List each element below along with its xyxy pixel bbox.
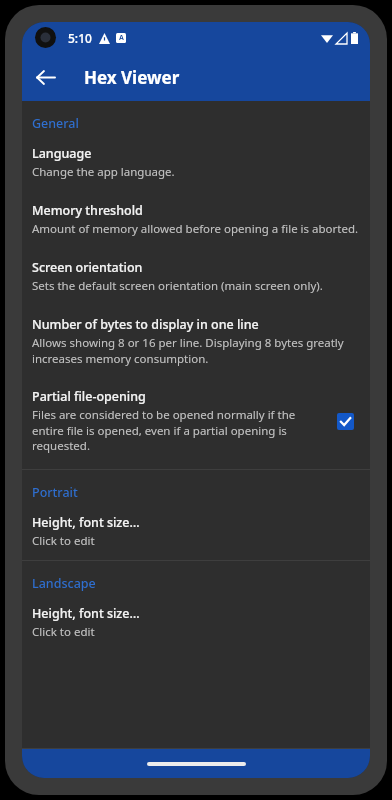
staticText: Memory threshold	[32, 202, 143, 219]
staticText: Click to edit	[32, 533, 95, 549]
staticText: 5:10	[68, 30, 92, 46]
button[interactable]: Number of bytes to display in one line	[22, 305, 370, 377]
button[interactable]: Language	[22, 134, 370, 191]
button[interactable]: Partial file-opening toggle	[330, 406, 360, 436]
staticText: Height, font size…	[32, 605, 140, 622]
staticText: Allows showing 8 or 16 per line. Display…	[32, 335, 360, 366]
staticText: Hex Viewer	[84, 66, 180, 89]
button[interactable]: Partial file-opening	[22, 377, 370, 464]
staticText: Number of bytes to display in one line	[32, 316, 259, 333]
button[interactable]: Screen orientation	[22, 248, 370, 305]
staticText: Screen orientation	[32, 259, 143, 276]
staticText: Language	[32, 145, 92, 162]
staticText: General	[32, 115, 79, 132]
staticText: A	[119, 33, 124, 43]
staticText: Files are considered to be opened normal…	[32, 407, 320, 453]
staticText: Partial file-opening	[32, 388, 146, 405]
button[interactable]: Memory threshold	[22, 191, 370, 248]
staticText: Click to edit	[32, 624, 95, 640]
staticText: Height, font size…	[32, 514, 140, 531]
staticText: Sets the default screen orientation (mai…	[32, 278, 323, 294]
staticText: Landscape	[32, 575, 96, 592]
button[interactable]: Height, font size…	[22, 503, 370, 560]
staticText: Portrait	[32, 484, 78, 501]
button[interactable]: Back	[22, 54, 68, 100]
button[interactable]: Height, font size…	[22, 594, 370, 651]
staticText: Change the app language.	[32, 164, 175, 180]
staticText: Amount of memory allowed before opening …	[32, 221, 359, 237]
